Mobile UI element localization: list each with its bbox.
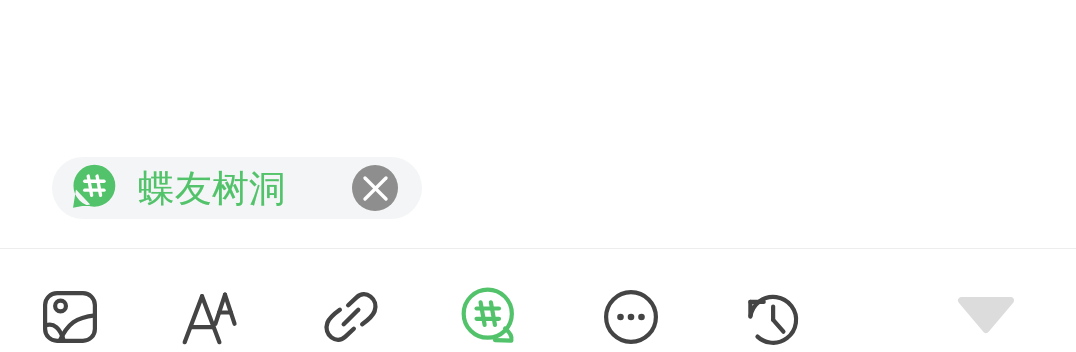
- button[interactable]: Insert link: [311, 277, 391, 352]
- button[interactable]: Insert image: [30, 277, 110, 352]
- staticText: 蝶友树洞: [138, 165, 286, 212]
- button[interactable]: Topic: [450, 277, 530, 352]
- button[interactable]: History: [732, 277, 812, 352]
- button[interactable]: Remove topic: [352, 165, 398, 211]
- button[interactable]: 蝶友树洞: [52, 157, 422, 219]
- button[interactable]: Collapse keyboard: [946, 285, 1026, 345]
- button[interactable]: Text style: [171, 277, 251, 352]
- button[interactable]: More options: [591, 277, 671, 352]
